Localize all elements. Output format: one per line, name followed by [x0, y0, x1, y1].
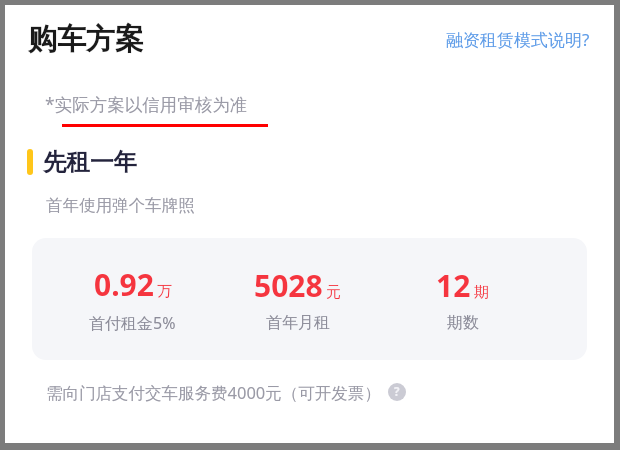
staticText: 12	[436, 265, 471, 306]
staticText: 万	[157, 282, 172, 301]
button[interactable]: 融资租赁模式说明?	[444, 24, 592, 55]
staticText: 期数	[447, 313, 479, 333]
staticText: 首付租金5%	[89, 312, 176, 334]
staticText: 期	[474, 283, 489, 302]
button[interactable]: 服务费说明帮助	[385, 380, 409, 404]
staticText: 先租一年	[43, 147, 137, 177]
staticText: 元	[326, 283, 341, 302]
staticText: 购车方案	[28, 21, 144, 58]
staticText: ?	[394, 384, 400, 400]
staticText: 融资租赁模式说明?	[446, 28, 590, 51]
staticText: 需向门店支付交车服务费4000元（可开发票）	[46, 381, 381, 404]
button[interactable]: 0.92	[32, 238, 587, 360]
staticText: 首年使用弹个车牌照	[46, 195, 195, 216]
staticText: *实际方案以信用审核为准	[45, 92, 248, 116]
staticText: 5028	[254, 265, 323, 306]
staticText: 首年月租	[266, 313, 330, 333]
staticText: 0.92	[94, 264, 154, 305]
